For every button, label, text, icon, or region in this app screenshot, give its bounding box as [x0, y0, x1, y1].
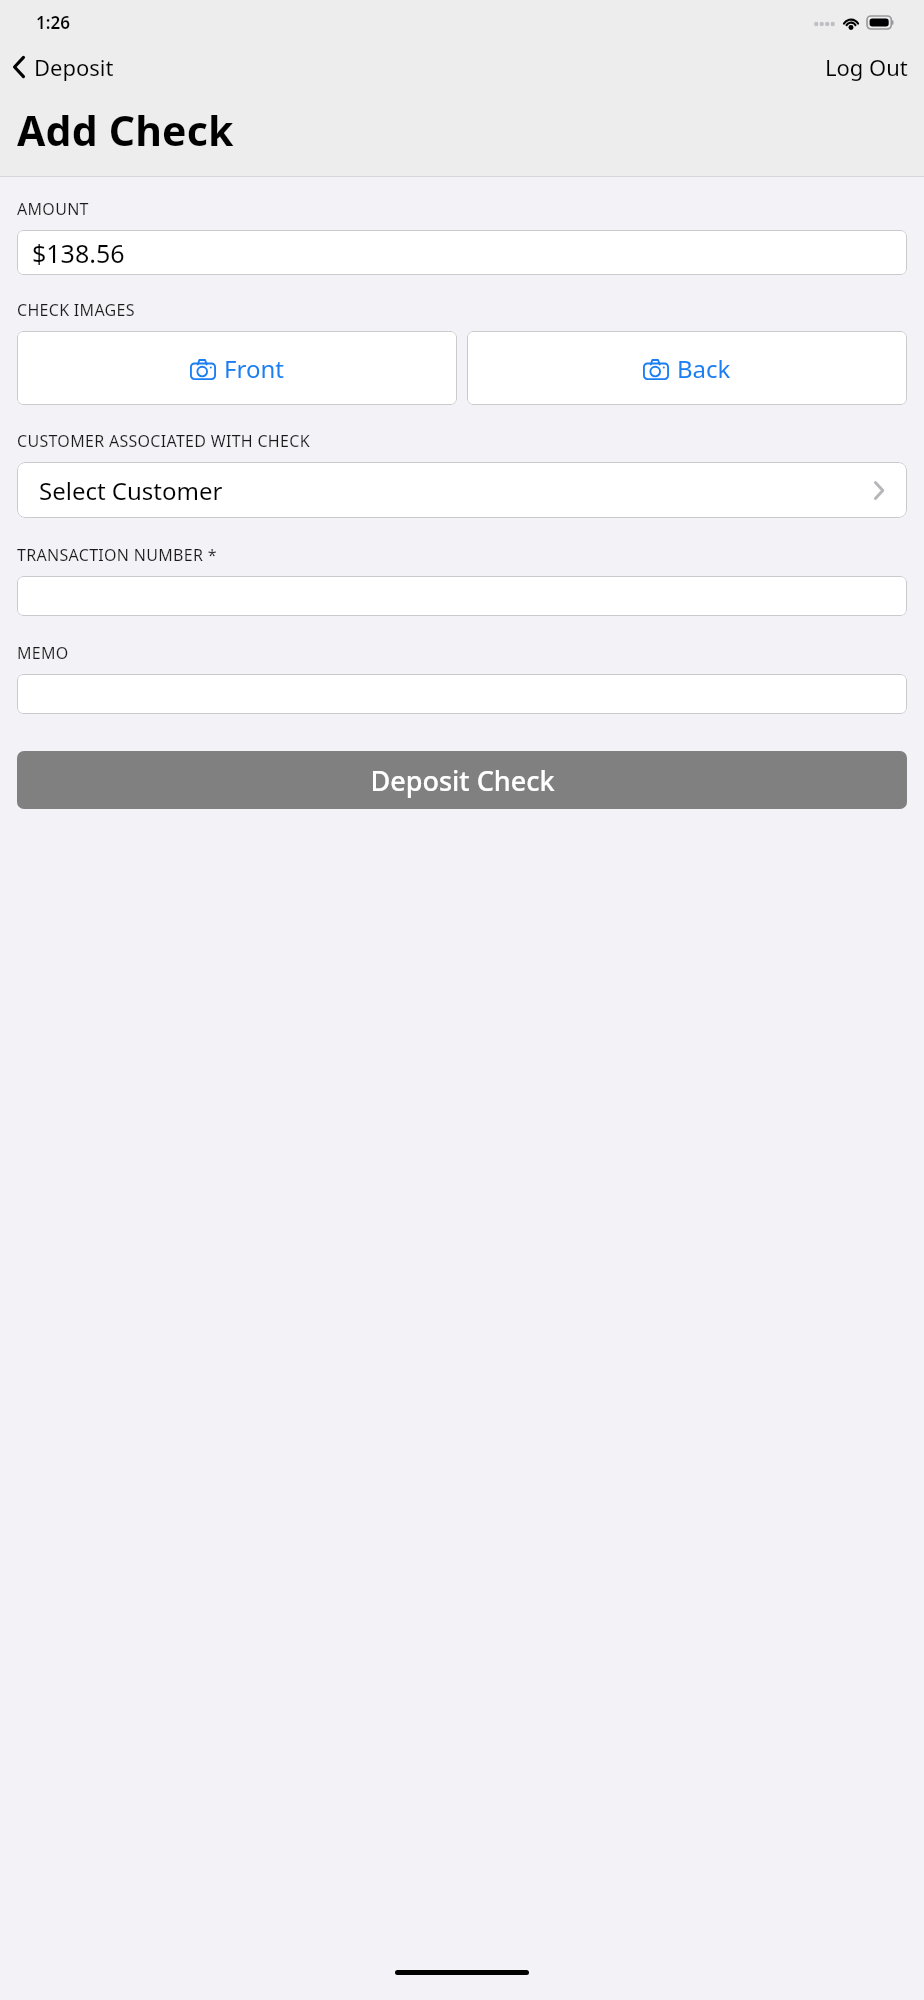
button[interactable]: Log Out: [809, 46, 924, 88]
staticText: Select Customer: [39, 474, 223, 507]
staticText: Front: [224, 352, 284, 385]
staticText: MEMO: [17, 642, 69, 664]
button[interactable]: Deposit: [0, 48, 126, 86]
button[interactable]: $138.56: [17, 230, 907, 275]
staticText: Log Out: [825, 52, 908, 82]
staticText: $138.56: [32, 236, 125, 270]
button[interactable]: Front: [17, 331, 457, 405]
staticText: Deposit: [34, 52, 114, 82]
staticText: CHECK IMAGES: [17, 299, 135, 321]
staticText: 1:26: [36, 11, 70, 34]
button[interactable]: Back: [467, 331, 907, 405]
staticText: CUSTOMER ASSOCIATED WITH CHECK: [17, 430, 310, 452]
staticText: Back: [677, 352, 731, 385]
staticText: TRANSACTION NUMBER *: [17, 544, 217, 566]
button[interactable]: Deposit Check: [17, 751, 907, 809]
staticText: Deposit Check: [370, 762, 555, 799]
button[interactable]: [17, 674, 907, 714]
staticText: AMOUNT: [17, 198, 89, 220]
button[interactable]: Select Customer: [17, 462, 907, 518]
button[interactable]: [17, 576, 907, 616]
staticText: Add Check: [17, 102, 234, 158]
